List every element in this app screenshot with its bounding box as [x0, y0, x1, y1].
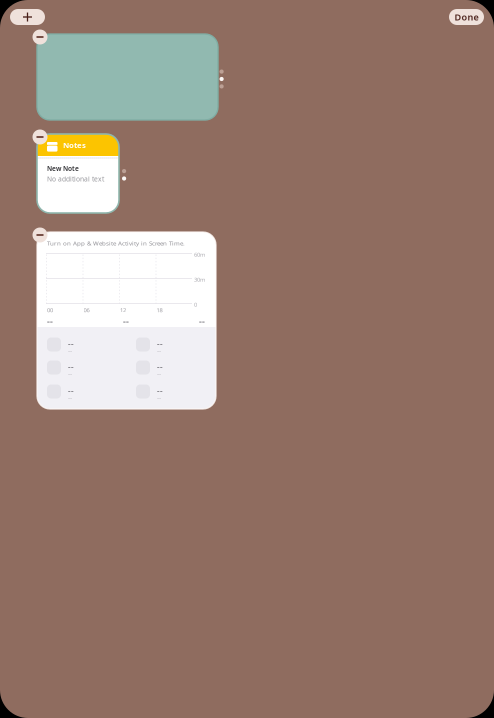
staticText: -- — [157, 338, 163, 349]
staticText: -- — [199, 315, 205, 327]
staticText: Turn on App & Website Activity in Screen… — [47, 239, 185, 247]
staticText: 60m — [194, 250, 205, 258]
button[interactable]: Remove Widget — [31, 28, 48, 45]
button[interactable]: Done — [449, 9, 484, 25]
staticText: -- — [68, 369, 72, 378]
staticText: -- — [157, 393, 161, 402]
button[interactable]: Widget — [37, 34, 218, 120]
staticText: New Note — [47, 164, 79, 173]
staticText: 30m — [194, 275, 205, 283]
staticText: 18 — [156, 306, 162, 314]
staticText: -- — [68, 361, 74, 372]
staticText: 12 — [120, 306, 126, 314]
staticText: -- — [157, 346, 161, 355]
staticText: -- — [68, 385, 74, 396]
button[interactable]: Notes widget — [37, 134, 119, 213]
staticText: -- — [68, 346, 72, 355]
staticText: 0 — [194, 300, 197, 308]
button[interactable]: Add widget — [10, 9, 45, 25]
staticText: -- — [157, 361, 163, 372]
staticText: 00 — [47, 306, 53, 314]
button[interactable]: Remove Screen Time widget — [31, 226, 48, 243]
staticText: Notes — [63, 140, 86, 150]
staticText: -- — [157, 369, 161, 378]
staticText: -- — [47, 315, 53, 327]
staticText: -- — [157, 385, 163, 396]
staticText: -- — [123, 315, 129, 327]
staticText: -- — [68, 338, 74, 349]
staticText: Done — [454, 11, 478, 23]
staticText: No additional text — [47, 174, 104, 183]
button[interactable]: Screen Time widget — [37, 232, 216, 409]
staticText: -- — [68, 393, 72, 402]
staticText: 06 — [83, 306, 89, 314]
button[interactable]: Remove Notes widget — [31, 128, 48, 145]
